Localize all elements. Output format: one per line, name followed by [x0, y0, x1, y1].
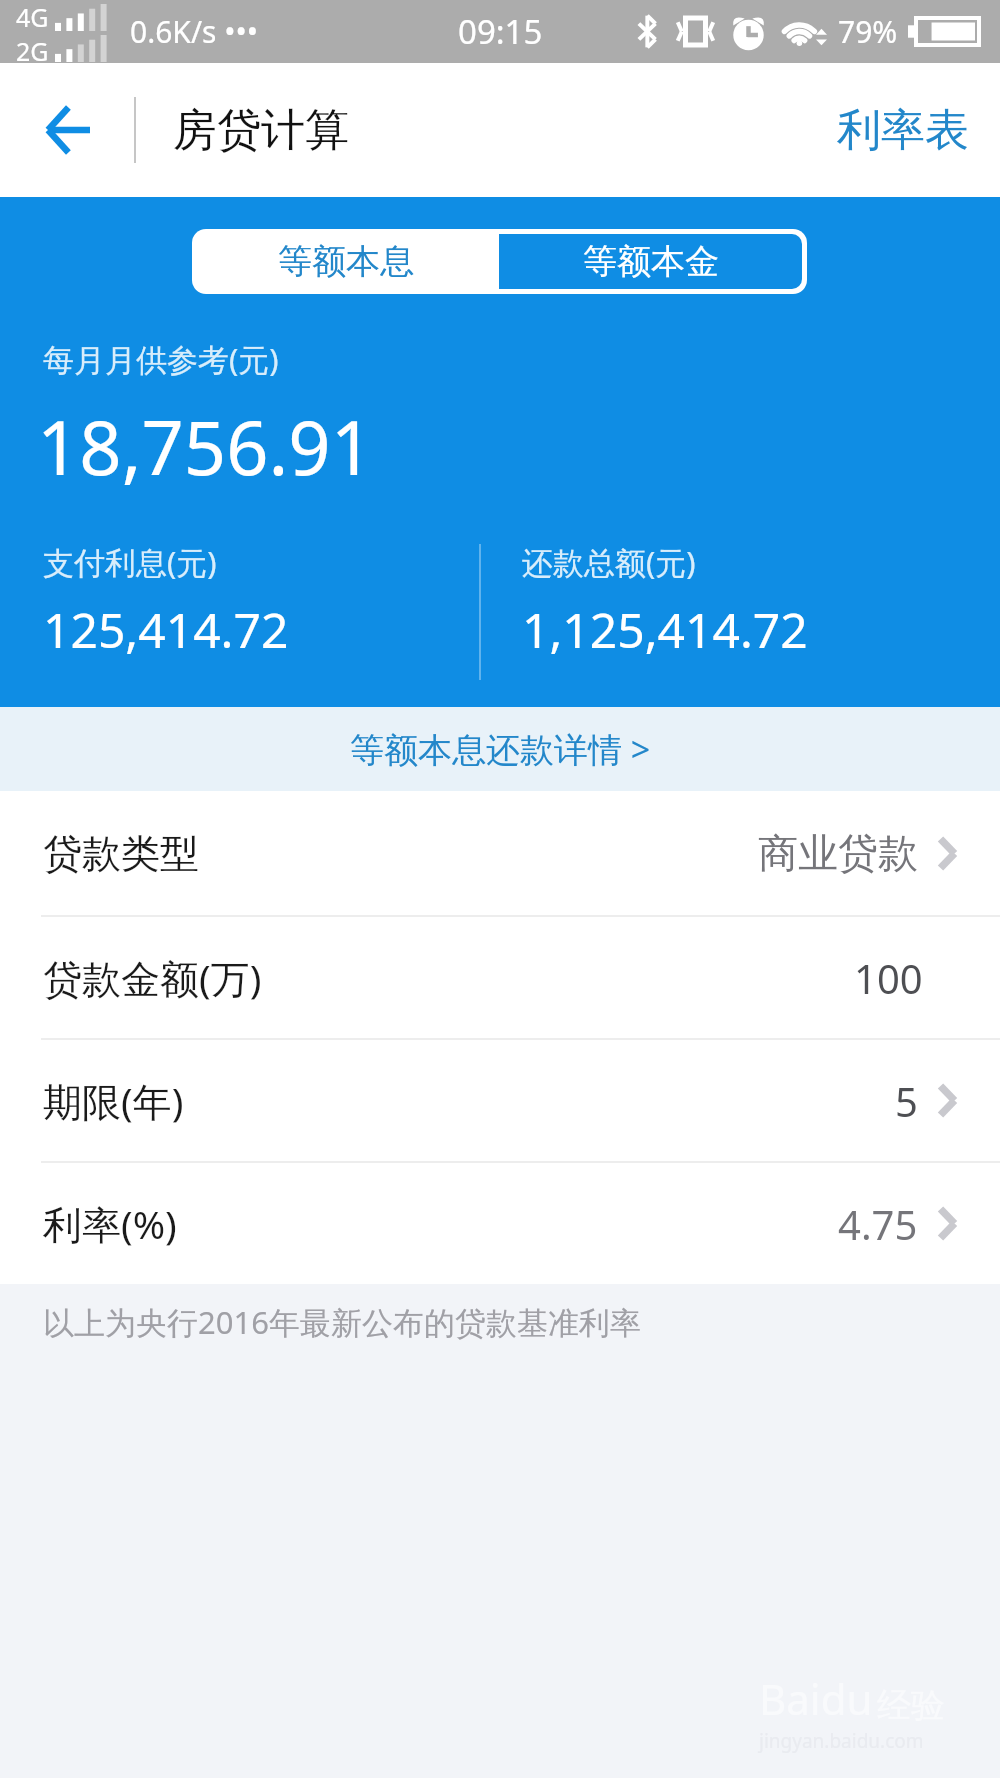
- staticText: 100: [854, 951, 923, 1005]
- button[interactable]: 等额本金: [499, 234, 802, 289]
- staticText: 支付利息(元): [43, 541, 217, 583]
- staticText: 利率(%): [43, 1197, 177, 1250]
- staticText: 贷款金额(万): [43, 951, 262, 1004]
- staticText: 18,756.91: [37, 396, 373, 497]
- staticText: 还款总额(元): [522, 541, 696, 583]
- staticText: 125,414.72: [43, 597, 289, 662]
- staticText: 以上为央行2016年最新公布的贷款基准利率: [43, 1301, 641, 1343]
- staticText: 09:15: [458, 9, 543, 54]
- staticText: 房贷计算: [173, 103, 349, 158]
- button[interactable]: 期限(年): [0, 1040, 1000, 1161]
- staticText: 1,125,414.72: [522, 597, 808, 662]
- staticText: 4G: [16, 0, 49, 34]
- button[interactable]: 贷款金额(万): [0, 917, 1000, 1038]
- button[interactable]: 等额本息: [192, 229, 499, 294]
- staticText: 0.6K/s •••: [130, 11, 259, 52]
- button[interactable]: 贷款类型: [0, 791, 1000, 915]
- staticText: 4.75: [838, 1197, 918, 1251]
- button[interactable]: 利率(%): [0, 1163, 1000, 1284]
- staticText: 利率表: [837, 103, 969, 158]
- staticText: 79%: [838, 11, 898, 52]
- staticText: 2G: [16, 34, 49, 63]
- staticText: jingyan.baidu.com: [759, 1728, 924, 1754]
- staticText: 等额本金: [583, 240, 719, 283]
- button[interactable]: 等额本息还款详情 >: [0, 707, 1000, 791]
- staticText: 每月月供参考(元): [43, 338, 279, 380]
- staticText: 等额本息还款详情 >: [350, 726, 651, 772]
- staticText: 5: [895, 1074, 918, 1128]
- button[interactable]: 利率表: [807, 63, 1000, 197]
- staticText: 商业贷款: [758, 828, 918, 878]
- staticText: 等额本息: [278, 240, 414, 283]
- staticText: 贷款类型: [43, 829, 199, 878]
- staticText: 期限(年): [43, 1074, 184, 1127]
- button[interactable]: Back: [0, 63, 134, 197]
